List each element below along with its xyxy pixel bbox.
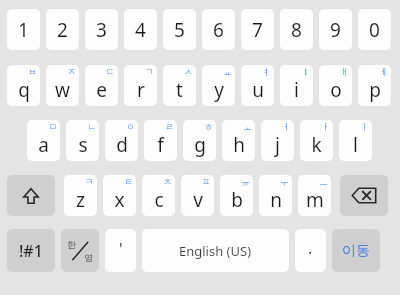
- staticText: c: [154, 187, 164, 213]
- staticText: ㄹ: [165, 121, 174, 132]
- button[interactable]: .: [295, 229, 326, 272]
- button[interactable]: 3: [85, 9, 118, 50]
- button[interactable]: d: [105, 120, 138, 161]
- button[interactable]: 8: [280, 9, 313, 50]
- button[interactable]: Backspace: [340, 175, 388, 216]
- button[interactable]: t: [163, 65, 196, 106]
- staticText: 영: [84, 252, 93, 263]
- staticText: ㅛ: [223, 66, 232, 77]
- staticText: l: [353, 132, 358, 158]
- staticText: ㅂ: [28, 66, 37, 77]
- staticText: ㅊ: [163, 176, 172, 187]
- staticText: ㅐ: [340, 66, 349, 77]
- staticText: f: [157, 132, 164, 158]
- staticText: i: [294, 77, 299, 103]
- staticText: ㅑ: [301, 66, 310, 77]
- button[interactable]: e: [85, 65, 118, 106]
- staticText: .: [308, 237, 313, 259]
- button[interactable]: 5: [163, 9, 196, 50]
- staticText: 9: [330, 17, 341, 43]
- button[interactable]: z: [64, 175, 97, 216]
- staticText: m: [306, 187, 324, 213]
- staticText: y: [214, 77, 224, 103]
- staticText: 한: [67, 239, 76, 250]
- button[interactable]: j: [261, 120, 294, 161]
- staticText: e: [96, 77, 107, 103]
- staticText: 3: [96, 17, 107, 43]
- staticText: ': [119, 238, 123, 260]
- button[interactable]: p: [358, 65, 391, 106]
- staticText: ㄴ: [87, 121, 96, 132]
- button[interactable]: l: [339, 120, 372, 161]
- staticText: ㅅ: [184, 66, 193, 77]
- staticText: 8: [291, 17, 302, 43]
- button[interactable]: a: [27, 120, 60, 161]
- staticText: t: [176, 77, 183, 103]
- staticText: ㅔ: [379, 66, 388, 77]
- staticText: ㅌ: [124, 176, 133, 187]
- button[interactable]: English (US): [142, 229, 289, 272]
- staticText: 0: [369, 17, 380, 43]
- staticText: s: [78, 132, 88, 158]
- button[interactable]: i: [280, 65, 313, 106]
- button[interactable]: ': [105, 229, 136, 272]
- staticText: w: [55, 77, 70, 103]
- button[interactable]: Korean English toggle: [61, 229, 99, 272]
- staticText: English (US): [179, 242, 252, 260]
- staticText: ㅜ: [280, 176, 289, 187]
- staticText: ㅏ: [321, 121, 330, 132]
- button[interactable]: u: [241, 65, 274, 106]
- staticText: h: [233, 132, 245, 158]
- staticText: ㅠ: [241, 176, 250, 187]
- button[interactable]: h: [222, 120, 255, 161]
- staticText: ㅎ: [204, 121, 213, 132]
- staticText: a: [38, 132, 49, 158]
- button[interactable]: 6: [202, 9, 235, 50]
- button[interactable]: 1: [7, 9, 40, 50]
- button[interactable]: 이동: [332, 229, 380, 272]
- staticText: n: [270, 187, 282, 213]
- staticText: d: [116, 132, 128, 158]
- button[interactable]: 4: [124, 9, 157, 50]
- staticText: ㅋ: [85, 176, 94, 187]
- button[interactable]: !#1: [7, 229, 55, 272]
- staticText: 2: [57, 17, 68, 43]
- staticText: !#1: [19, 240, 43, 262]
- staticText: k: [311, 132, 322, 158]
- button[interactable]: y: [202, 65, 235, 106]
- staticText: ㅣ: [360, 121, 369, 132]
- staticText: 6: [213, 17, 224, 43]
- button[interactable]: q: [7, 65, 40, 106]
- button[interactable]: g: [183, 120, 216, 161]
- staticText: r: [137, 77, 145, 103]
- button[interactable]: s: [66, 120, 99, 161]
- staticText: u: [252, 77, 264, 103]
- button[interactable]: 2: [46, 9, 79, 50]
- staticText: ㅁ: [48, 121, 57, 132]
- staticText: q: [18, 77, 30, 103]
- button[interactable]: o: [319, 65, 352, 106]
- button[interactable]: c: [142, 175, 175, 216]
- staticText: 1: [18, 17, 29, 43]
- button[interactable]: r: [124, 65, 157, 106]
- button[interactable]: 7: [241, 9, 274, 50]
- staticText: 이동: [342, 242, 370, 260]
- button[interactable]: 0: [358, 9, 391, 50]
- button[interactable]: x: [103, 175, 136, 216]
- staticText: o: [330, 77, 342, 103]
- staticText: ㅈ: [67, 66, 76, 77]
- staticText: ㄷ: [106, 66, 115, 77]
- button[interactable]: v: [181, 175, 214, 216]
- button[interactable]: w: [46, 65, 79, 106]
- button[interactable]: k: [300, 120, 333, 161]
- button[interactable]: f: [144, 120, 177, 161]
- button[interactable]: Shift: [7, 175, 55, 216]
- staticText: ㅗ: [243, 121, 252, 132]
- button[interactable]: 9: [319, 9, 352, 50]
- staticText: ㅇ: [126, 121, 135, 132]
- button[interactable]: b: [220, 175, 253, 216]
- staticText: 7: [252, 17, 263, 43]
- button[interactable]: n: [259, 175, 292, 216]
- staticText: 5: [174, 17, 185, 43]
- button[interactable]: m: [298, 175, 331, 216]
